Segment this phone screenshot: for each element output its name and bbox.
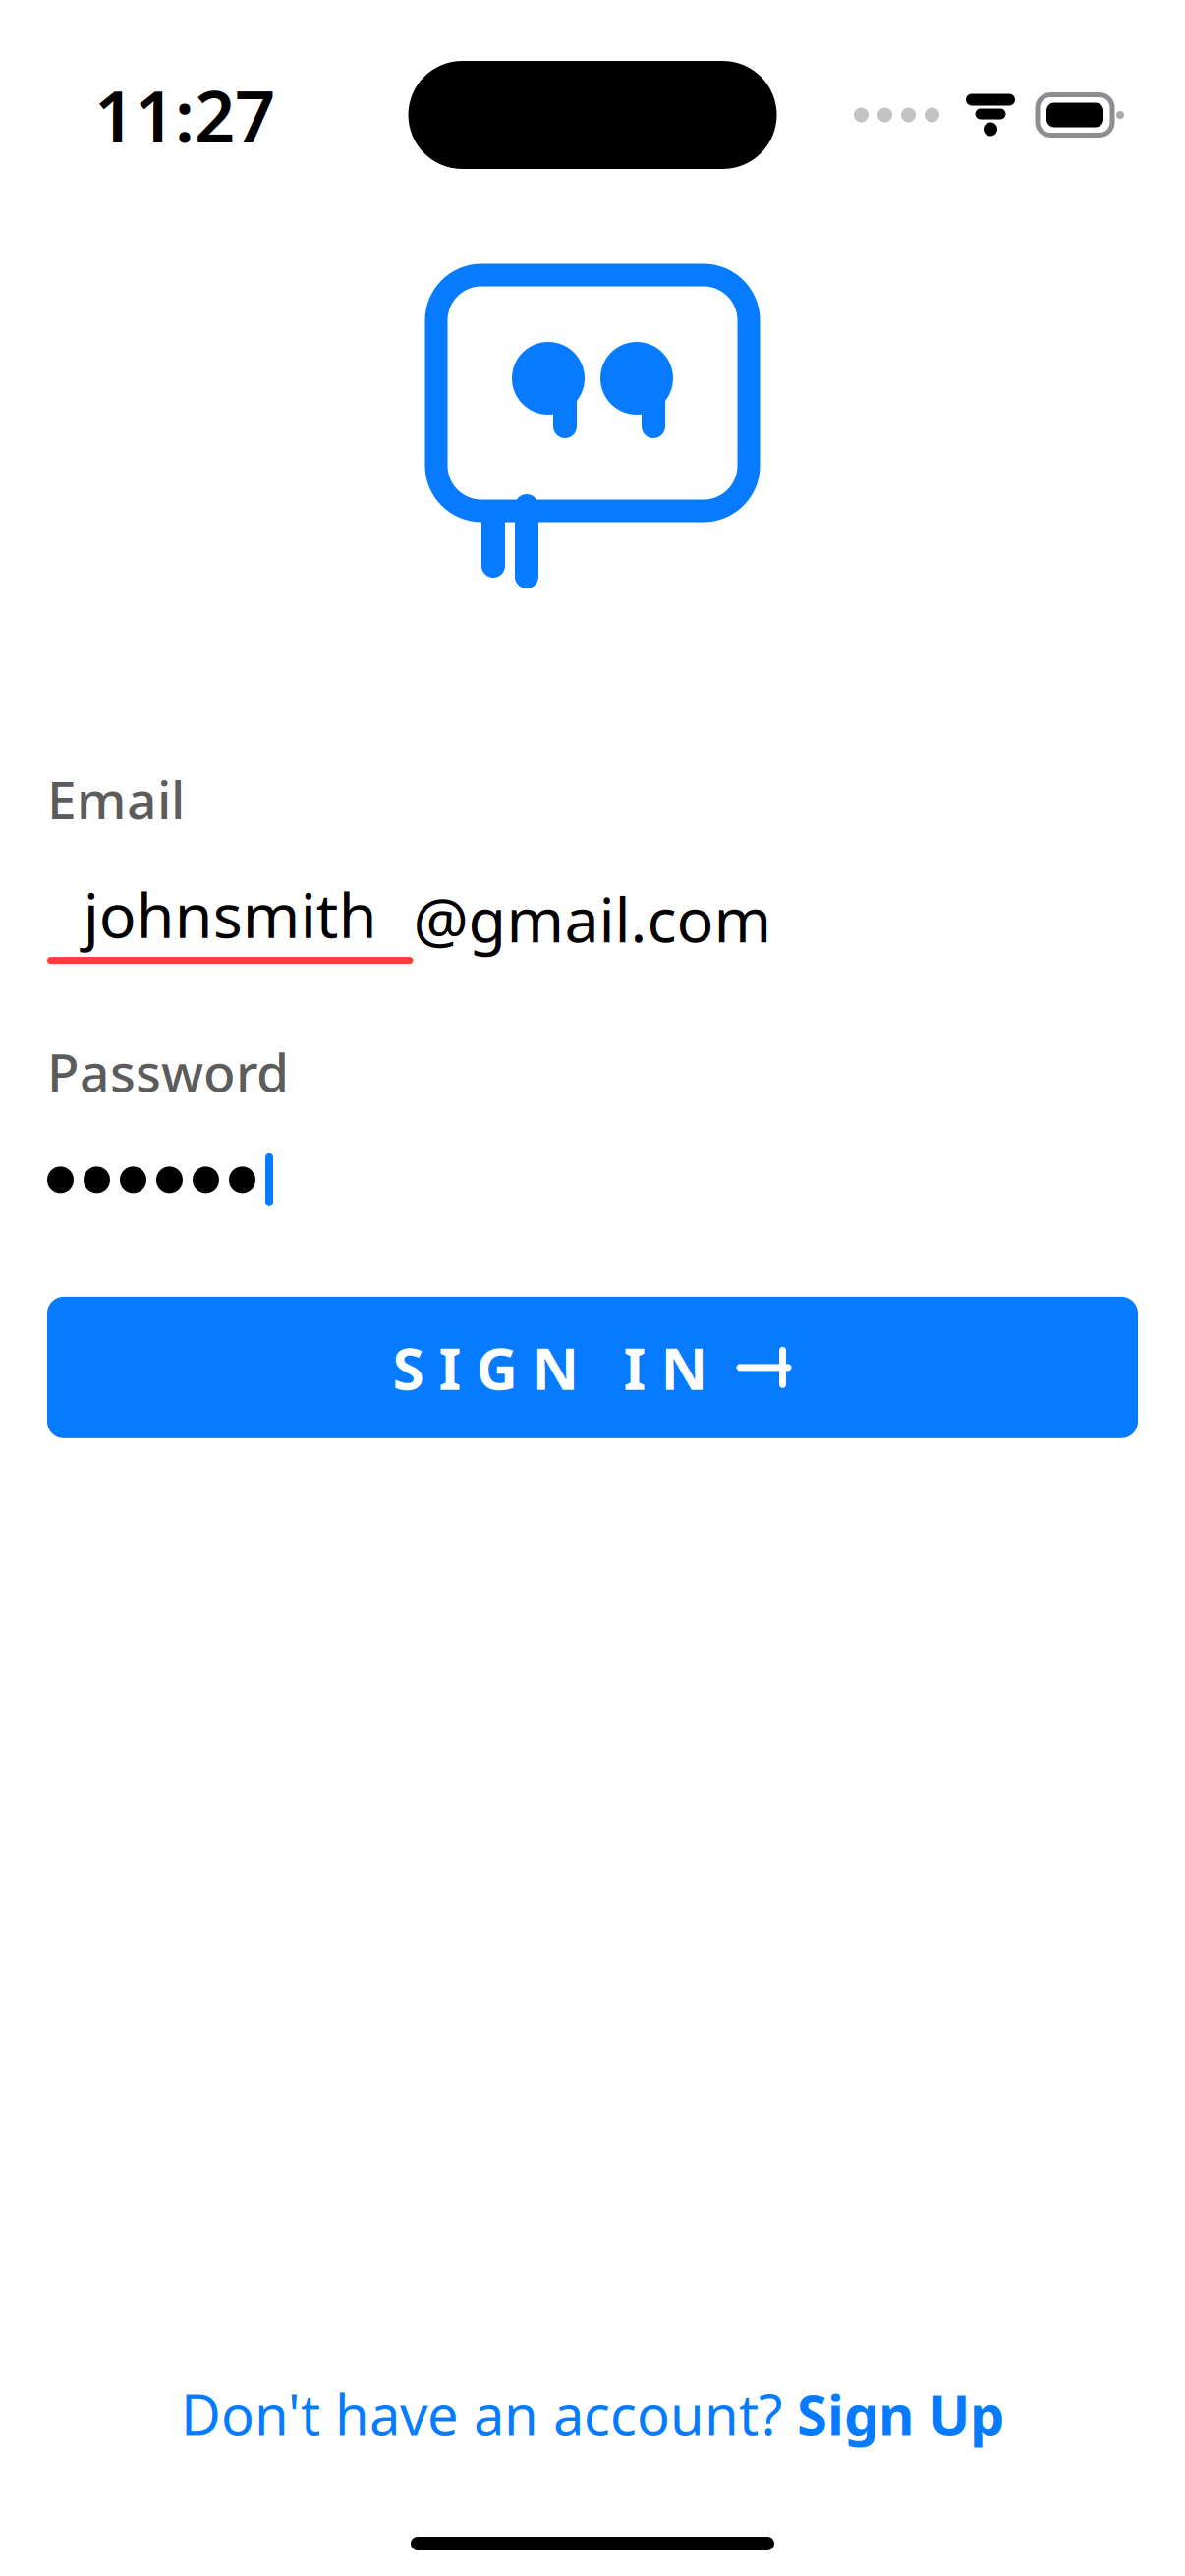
button[interactable]: S I G N I N	[47, 1297, 1138, 1438]
staticText: johnsmith	[83, 873, 377, 955]
staticText: S I G N I N	[393, 1329, 708, 1406]
staticText: Password	[47, 1036, 289, 1106]
staticText: 11:27	[94, 68, 275, 162]
button[interactable]: Don't have an account?	[157, 2361, 1028, 2466]
staticText: Sign Up	[797, 2377, 1004, 2450]
staticText: Email	[47, 764, 185, 834]
staticText: @gmail.com	[413, 878, 772, 959]
staticText: Don't have an account?	[181, 2377, 797, 2450]
